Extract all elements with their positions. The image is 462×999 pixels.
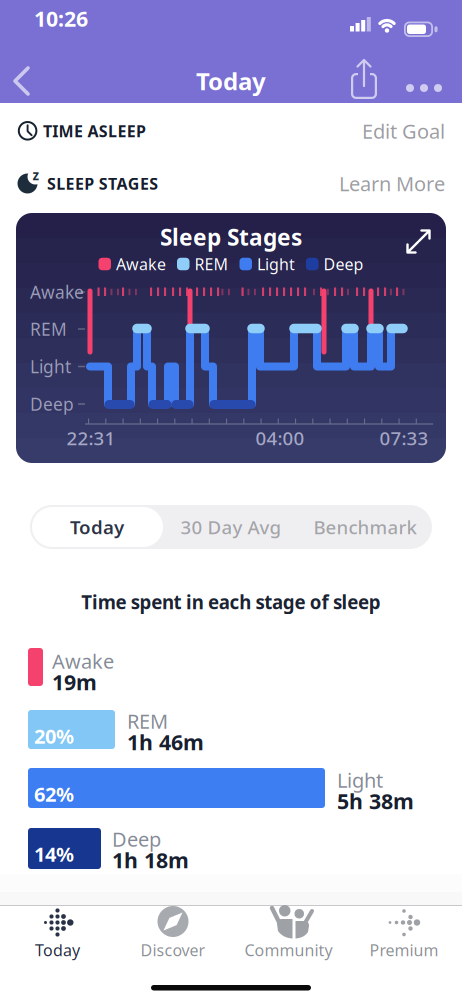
staticText: 1h 46m bbox=[127, 728, 204, 756]
staticText: Community bbox=[244, 939, 332, 961]
staticText: 14% bbox=[34, 841, 74, 867]
staticText: Light bbox=[30, 355, 71, 378]
staticText: REM bbox=[30, 317, 67, 340]
staticText: Edit Goal bbox=[362, 118, 445, 144]
staticText: REM bbox=[127, 708, 168, 734]
staticText: Benchmark bbox=[313, 515, 416, 539]
staticText: Awake bbox=[30, 280, 84, 303]
staticText: Premium bbox=[369, 939, 438, 961]
staticText: REM bbox=[194, 253, 228, 275]
staticText: Deep bbox=[323, 253, 363, 275]
staticText: Today bbox=[196, 65, 266, 97]
staticText: 07:33 bbox=[379, 426, 428, 450]
staticText: Awake bbox=[116, 253, 166, 275]
staticText: Sleep Stages bbox=[160, 222, 302, 252]
staticText: 1h 18m bbox=[112, 846, 189, 874]
staticText: TIME ASLEEP bbox=[43, 120, 146, 142]
staticText: Deep bbox=[112, 826, 161, 852]
staticText: 22:31 bbox=[66, 426, 115, 450]
staticText: Learn More bbox=[339, 170, 445, 197]
staticText: z bbox=[32, 166, 39, 184]
staticText: Light bbox=[257, 253, 295, 275]
staticText: 62% bbox=[34, 781, 74, 807]
staticText: 20% bbox=[34, 723, 74, 749]
staticText: Awake bbox=[52, 648, 114, 674]
staticText: 04:00 bbox=[255, 426, 304, 450]
staticText: SLEEP STAGES bbox=[47, 173, 158, 194]
staticText: Light bbox=[337, 767, 383, 793]
staticText: Today bbox=[35, 939, 80, 961]
staticText: 19m bbox=[52, 668, 97, 696]
staticText: Discover bbox=[140, 939, 205, 961]
staticText: Deep bbox=[30, 392, 74, 415]
staticText: Today bbox=[70, 515, 124, 539]
staticText: 5h 38m bbox=[337, 787, 414, 815]
staticText: 30 Day Avg bbox=[180, 515, 281, 539]
staticText: 10:26 bbox=[34, 4, 88, 33]
staticText: Time spent in each stage of sleep bbox=[81, 590, 381, 614]
